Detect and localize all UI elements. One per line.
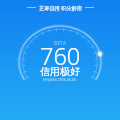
staticText: 芝麻信用 积分解密 bbox=[39, 4, 82, 11]
staticText: 760 bbox=[40, 40, 81, 72]
button[interactable]: 芝麻信用 积分解密 bbox=[0, 0, 120, 15]
staticText: BETA bbox=[54, 40, 67, 46]
staticText: 信用极好 bbox=[40, 65, 80, 78]
staticText: 评估时间 2016-06-06 bbox=[43, 77, 77, 82]
